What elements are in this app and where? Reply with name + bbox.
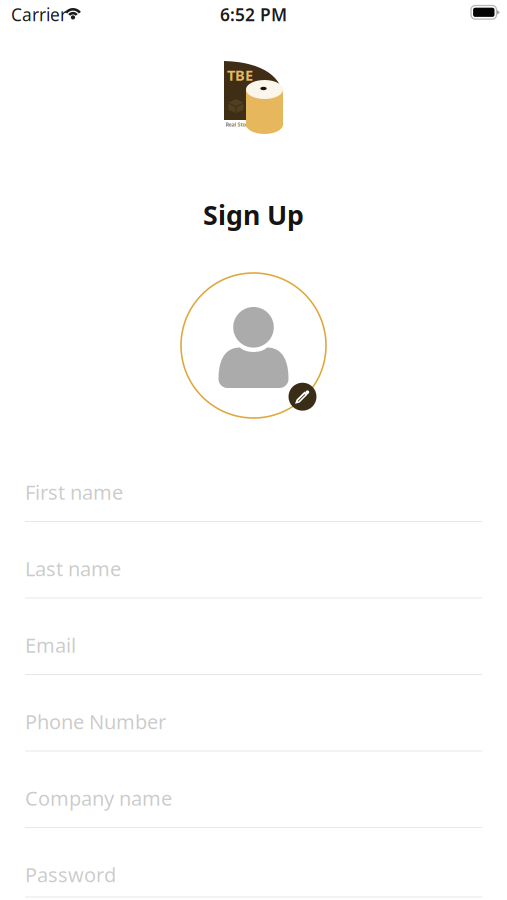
staticText: Phone Number [25, 708, 166, 735]
staticText: Company name [25, 785, 172, 811]
button[interactable]: Password [25, 860, 482, 897]
staticText: TBE [227, 65, 253, 85]
staticText: Real Store [225, 121, 250, 128]
staticText: 6:52 PM [220, 3, 287, 26]
staticText: Last name [25, 555, 121, 582]
button[interactable]: First name [25, 478, 482, 522]
button[interactable]: Company name [25, 784, 482, 828]
button[interactable]: Edit profile photo [288, 383, 316, 411]
staticText: First name [25, 479, 123, 505]
staticText: Password [25, 861, 116, 888]
button[interactable]: Last name [25, 554, 482, 598]
staticText: Carrier [11, 3, 67, 26]
staticText: Sign Up [203, 197, 304, 232]
button[interactable]: Email [25, 631, 482, 675]
button[interactable]: Phone Number [25, 707, 482, 751]
staticText: Email [25, 632, 76, 658]
